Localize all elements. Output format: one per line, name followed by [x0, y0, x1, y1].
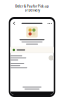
- staticText: Order & Pay for Pick-up: [15, 5, 49, 8]
- button[interactable]: [10, 47, 54, 53]
- button[interactable]: More options: [47, 21, 52, 26]
- button[interactable]: Back: [12, 21, 17, 26]
- staticText: or Delivery: [24, 9, 39, 12]
